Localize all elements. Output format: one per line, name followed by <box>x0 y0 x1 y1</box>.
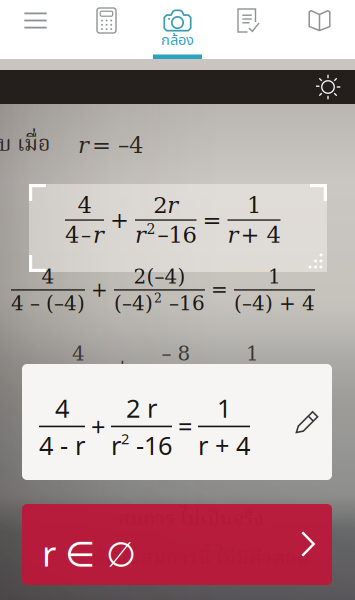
staticText: + <box>79 421 96 445</box>
staticText: 4 - r <box>39 428 85 462</box>
staticText: 4 <box>58 408 71 431</box>
staticText: 2 <box>121 429 129 448</box>
staticText: –16 <box>163 292 205 315</box>
staticText: 4 <box>72 342 85 365</box>
staticText: – <box>81 223 91 247</box>
staticText: + <box>91 410 105 443</box>
staticText: – 8 <box>104 408 133 431</box>
staticText: 2 <box>154 291 162 305</box>
staticText: 2 r <box>126 391 157 425</box>
button[interactable]: r ∈ ∅ <box>22 504 332 585</box>
staticText: -16 <box>129 428 172 462</box>
button[interactable]: Notes <box>213 0 284 59</box>
staticText: 1 <box>268 265 281 288</box>
staticText: = <box>211 278 228 302</box>
staticText: บ เมื่อ <box>0 128 50 162</box>
staticText: –16 <box>157 222 196 248</box>
staticText: (–4) <box>114 292 153 315</box>
staticText: 2(–4) <box>133 265 185 288</box>
staticText: = <box>141 421 158 445</box>
staticText: = <box>221 355 238 379</box>
staticText: 4 <box>41 265 54 288</box>
staticText: = –4 <box>92 132 143 158</box>
button[interactable]: Calculator <box>71 0 142 59</box>
staticText: 1 <box>166 408 179 431</box>
staticText: 4 – (–4) <box>11 292 85 315</box>
staticText: 4 <box>77 192 91 218</box>
staticText: r <box>78 132 89 158</box>
staticText: + 4 <box>240 222 280 248</box>
staticText: กล้อง <box>161 29 194 51</box>
button[interactable]: Menu <box>0 0 71 59</box>
staticText: = <box>178 410 192 443</box>
staticText: 8 <box>58 435 71 458</box>
staticText: 2 <box>146 221 155 237</box>
staticText: + <box>114 355 131 379</box>
staticText: + <box>110 207 129 233</box>
staticText: 1 <box>217 391 231 425</box>
staticText: + <box>91 278 108 302</box>
staticText: r <box>227 222 238 248</box>
staticText: 4 <box>65 222 79 248</box>
staticText: 1 <box>246 342 259 365</box>
staticText: 0 <box>112 435 125 458</box>
staticText: ดังนั้นสมการนี้ ไม่มีคำตอบ <box>92 543 310 575</box>
staticText: r <box>135 222 146 248</box>
staticText: = <box>202 207 221 233</box>
staticText: 1 <box>247 192 261 218</box>
button[interactable]: Textbook <box>284 0 355 59</box>
button[interactable]: Camera <box>142 0 213 59</box>
staticText: – 8 <box>161 342 190 365</box>
staticText: 4 <box>55 391 69 425</box>
staticText: r + 4 <box>198 428 250 462</box>
staticText: r ∈ ∅ <box>42 530 136 576</box>
button[interactable]: Flash <box>305 70 351 104</box>
staticText: r <box>93 222 104 248</box>
staticText: 2 <box>153 192 167 218</box>
staticText: (–4) + 4 <box>234 292 315 315</box>
staticText: r <box>167 192 178 218</box>
staticText: r <box>111 428 121 462</box>
button[interactable]: Edit equation <box>287 400 327 444</box>
staticText: 0 <box>166 435 179 458</box>
